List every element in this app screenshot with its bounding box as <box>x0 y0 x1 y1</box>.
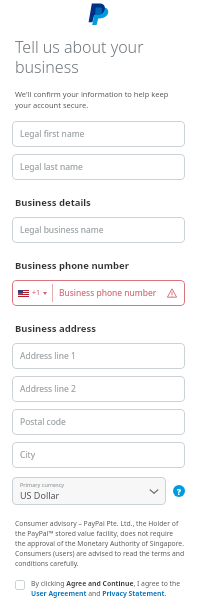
staticText: Address line 1 <box>20 350 76 362</box>
staticText: Consumer advisory – PayPal Pte. Ltd., th… <box>15 519 185 568</box>
button[interactable]: Address line 2 <box>12 376 185 402</box>
button[interactable]: City <box>12 442 185 468</box>
button[interactable]: Address line 1 <box>12 343 185 369</box>
staticText: Primary currency <box>20 481 65 488</box>
staticText: Business details <box>15 196 91 209</box>
button[interactable]: Legal business name <box>12 217 185 243</box>
staticText: Business phone number <box>15 259 129 272</box>
button[interactable]: Legal last name <box>12 154 185 180</box>
button[interactable]: By clicking Agree and Continue, I agree … <box>12 579 185 598</box>
staticText: Tell us about your business <box>15 36 144 77</box>
staticText: Legal last name <box>20 161 83 173</box>
staticText: By clicking Agree and Continue, I agree … <box>31 579 185 598</box>
staticText: Postal code <box>20 416 66 428</box>
staticText: ? <box>177 486 181 497</box>
button[interactable]: Primary currency <box>12 477 166 505</box>
staticText: Address line 2 <box>20 383 76 395</box>
staticText: US Dollar <box>20 489 60 501</box>
button[interactable]: Select country calling code <box>18 288 47 298</box>
staticText: Legal business name <box>20 224 104 236</box>
staticText: We'll confirm your information to help k… <box>15 89 185 110</box>
button[interactable]: Legal first name <box>12 121 185 147</box>
button[interactable]: More information about primary currency <box>173 485 185 497</box>
button[interactable]: Postal code <box>12 409 185 435</box>
staticText: Legal first name <box>20 128 85 140</box>
staticText: Business address <box>15 322 96 335</box>
button[interactable]: Select country calling code <box>12 280 185 306</box>
staticText: +1 <box>32 288 41 298</box>
staticText: Business phone number <box>59 287 167 299</box>
staticText: City <box>20 449 35 461</box>
